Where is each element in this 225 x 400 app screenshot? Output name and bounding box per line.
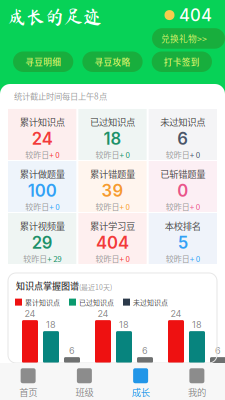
- staticText: 较昨日: [166, 253, 190, 264]
- staticText: 班级: [75, 385, 93, 399]
- staticText: 18: [119, 319, 129, 330]
- staticText: + 0: [119, 253, 129, 264]
- staticText: 5: [178, 232, 188, 253]
- staticText: 已过知识点: [90, 115, 135, 128]
- staticText: 累计视频量: [20, 219, 65, 232]
- staticText: 404: [96, 232, 129, 253]
- staticText: + 0: [190, 201, 200, 212]
- staticText: 未过知识点: [133, 297, 168, 307]
- staticText: 24: [170, 308, 181, 319]
- staticText: 39: [101, 180, 123, 201]
- staticText: + 29: [47, 253, 61, 264]
- button[interactable]: 打卡签到: [152, 51, 212, 72]
- button[interactable]: 已斩错题量: [149, 161, 217, 212]
- staticText: 成长: [132, 385, 150, 399]
- button[interactable]: 寻豆明细: [13, 51, 73, 72]
- staticText: 18: [103, 128, 121, 149]
- staticText: 较昨日: [23, 253, 47, 264]
- button[interactable]: 成长: [112, 368, 169, 399]
- button[interactable]: 寻豆攻略: [82, 51, 143, 72]
- staticText: 累计做题量: [20, 167, 65, 180]
- button[interactable]: 已过知识点: [78, 109, 147, 160]
- staticText: 累计知识点: [20, 115, 65, 128]
- staticText: 较昨日: [95, 149, 119, 160]
- staticText: 累计知识点: [25, 297, 60, 307]
- staticText: + 0: [190, 253, 200, 264]
- staticText: 6: [142, 345, 148, 356]
- staticText: 统计截止时间每日上午8点: [14, 90, 107, 102]
- staticText: + 0: [49, 201, 59, 212]
- button[interactable]: 兑换礼物>>: [152, 28, 225, 49]
- staticText: 已过知识点: [79, 297, 114, 307]
- staticText: 寻豆攻略: [94, 55, 130, 68]
- staticText: 寻豆明细: [25, 55, 61, 68]
- staticText: 本校排名: [165, 219, 201, 232]
- staticText: 累计学习豆: [90, 219, 135, 232]
- staticText: 6: [215, 345, 221, 356]
- staticText: 404: [179, 5, 212, 25]
- button[interactable]: 未过知识点: [149, 109, 217, 160]
- staticText: 6: [177, 128, 188, 149]
- staticText: 已斩错题量: [160, 167, 205, 180]
- button[interactable]: 本校排名: [149, 213, 217, 264]
- staticText: 较昨日: [25, 149, 49, 160]
- button[interactable]: 班级: [56, 368, 112, 399]
- button[interactable]: 累计错题量: [78, 161, 147, 212]
- staticText: 较昨日: [166, 149, 190, 160]
- staticText: 较昨日: [25, 201, 49, 212]
- button[interactable]: 累计知识点: [8, 109, 76, 160]
- button[interactable]: 累计学习豆: [78, 213, 147, 264]
- staticText: + 0: [119, 149, 129, 160]
- staticText: + 0: [119, 201, 129, 212]
- staticText: 打卡签到: [164, 55, 200, 68]
- staticText: 6: [69, 345, 75, 356]
- staticText: 未过知识点: [160, 115, 205, 128]
- staticText: 24: [97, 308, 108, 319]
- staticText: 较昨日: [95, 201, 119, 212]
- staticText: (最近10天): [79, 282, 112, 292]
- button[interactable]: 累计视频量: [8, 213, 76, 264]
- button[interactable]: 累计做题量: [8, 161, 76, 212]
- staticText: + 0: [49, 149, 59, 160]
- staticText: 知识点掌握图谱: [16, 279, 79, 292]
- staticText: + 0: [190, 149, 200, 160]
- staticText: 我的: [188, 385, 206, 399]
- staticText: 较昨日: [95, 253, 119, 264]
- staticText: 累计错题量: [90, 167, 135, 180]
- staticText: 首页: [19, 385, 37, 399]
- staticText: 24: [24, 308, 35, 319]
- staticText: 18: [46, 319, 56, 330]
- staticText: 18: [192, 319, 202, 330]
- staticText: 较昨日: [166, 201, 190, 212]
- staticText: 兑换礼物>>: [161, 32, 207, 45]
- staticText: 成长的足迹: [7, 7, 102, 26]
- staticText: 0: [177, 180, 188, 201]
- staticText: 24: [32, 128, 53, 149]
- staticText: 29: [32, 232, 53, 253]
- button[interactable]: 首页: [0, 368, 56, 399]
- button[interactable]: 我的: [169, 368, 225, 399]
- staticText: 100: [28, 180, 57, 201]
